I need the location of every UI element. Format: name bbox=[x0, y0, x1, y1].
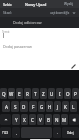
button[interactable]: Dalej bbox=[62, 127, 79, 138]
button[interactable]: D bbox=[20, 101, 28, 112]
button[interactable]: Y bbox=[12, 114, 20, 125]
button[interactable]: . bbox=[53, 127, 61, 138]
button[interactable]: T bbox=[32, 88, 39, 99]
staticText: N bbox=[55, 117, 59, 123]
staticText: V bbox=[39, 117, 42, 123]
staticText: S bbox=[14, 104, 17, 110]
staticText: Q bbox=[2, 91, 6, 97]
staticText: Z bbox=[42, 91, 45, 97]
staticText: uzytkownik@x bbox=[50, 11, 70, 15]
staticText: Dodaj pasazerow bbox=[3, 44, 32, 49]
staticText: B bbox=[47, 117, 50, 123]
button[interactable]: G bbox=[38, 101, 45, 112]
button[interactable]: J bbox=[54, 101, 61, 112]
staticText: U bbox=[50, 91, 54, 97]
button[interactable]: C bbox=[29, 114, 36, 125]
staticText: Y bbox=[15, 117, 18, 123]
staticText: M bbox=[62, 117, 67, 123]
staticText: Dodaj odbiorcow bbox=[13, 20, 42, 25]
staticText: , bbox=[16, 130, 17, 135]
staticText: . bbox=[57, 130, 58, 135]
button[interactable]: I bbox=[56, 88, 63, 99]
staticText: D bbox=[22, 104, 26, 110]
button[interactable]: U bbox=[48, 88, 55, 99]
button[interactable]: R bbox=[24, 88, 31, 99]
staticText: A bbox=[5, 104, 8, 110]
button[interactable]: Shift bbox=[0, 114, 11, 125]
button[interactable]: Szkic bbox=[0, 2, 12, 7]
staticText: T bbox=[34, 91, 37, 97]
staticText: Skad: bbox=[3, 10, 12, 15]
button[interactable]: N bbox=[53, 114, 60, 125]
button[interactable]: W bbox=[8, 88, 15, 99]
staticText: W bbox=[9, 91, 14, 97]
button[interactable]: V bbox=[37, 114, 44, 125]
button[interactable]: K bbox=[62, 101, 69, 112]
button[interactable]: L bbox=[70, 101, 77, 112]
button[interactable]: X bbox=[21, 114, 28, 125]
staticText: H bbox=[48, 104, 52, 110]
button[interactable]: Dodaj odbiorcow bbox=[0, 17, 79, 28]
button[interactable]: Q bbox=[0, 88, 7, 99]
staticText: X bbox=[23, 117, 26, 123]
button[interactable]: , bbox=[12, 127, 20, 138]
button[interactable]: B bbox=[45, 114, 52, 125]
button[interactable]: O bbox=[64, 88, 71, 99]
button[interactable]: P bbox=[72, 88, 79, 99]
staticText: Temat bbox=[2, 30, 10, 34]
button[interactable]: Wyslij bbox=[64, 2, 79, 6]
staticText: F bbox=[32, 104, 35, 110]
staticText: O bbox=[66, 91, 70, 97]
button[interactable]: H bbox=[46, 101, 53, 112]
staticText: L bbox=[72, 104, 75, 110]
button[interactable]: E bbox=[16, 88, 23, 99]
staticText: R bbox=[26, 91, 29, 97]
staticText: E bbox=[18, 91, 21, 97]
staticText: G bbox=[40, 104, 44, 110]
staticText: Dalej bbox=[67, 131, 74, 135]
button[interactable]: ?123 bbox=[0, 127, 11, 138]
button[interactable]: M bbox=[61, 114, 68, 125]
button[interactable]: Rozwin bbox=[71, 10, 76, 15]
button[interactable]: Z bbox=[40, 88, 47, 99]
staticText: Nowy Ujazd bbox=[25, 2, 47, 7]
staticText: P bbox=[74, 91, 77, 97]
button[interactable]: S bbox=[11, 101, 19, 112]
staticText: I bbox=[59, 91, 61, 97]
staticText: J bbox=[57, 104, 59, 110]
button[interactable]: F bbox=[29, 101, 37, 112]
button[interactable]: Edytuj bbox=[71, 64, 76, 69]
button[interactable]: A bbox=[2, 101, 10, 112]
button[interactable]: Backspace bbox=[69, 114, 79, 125]
staticText: C bbox=[31, 117, 34, 123]
staticText: ?123 bbox=[2, 131, 9, 135]
staticText: K bbox=[64, 104, 67, 110]
